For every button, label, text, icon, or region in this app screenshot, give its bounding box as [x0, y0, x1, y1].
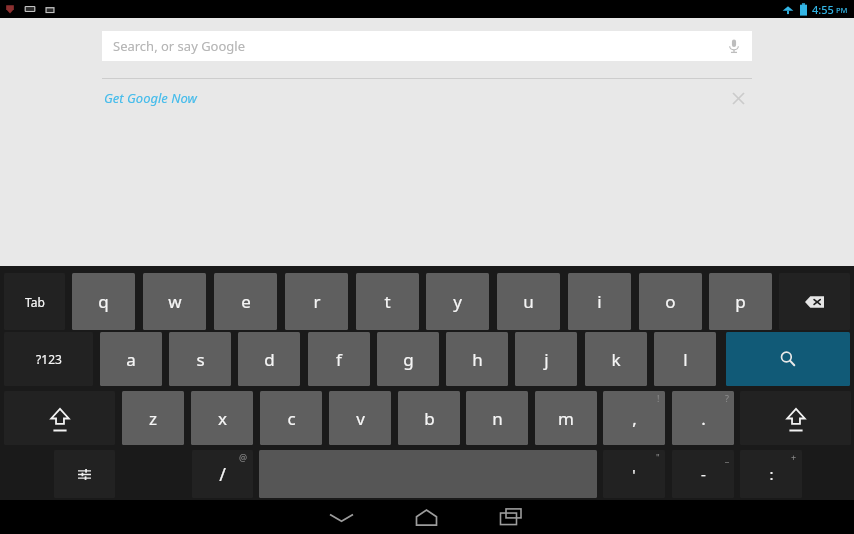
- button[interactable]: -: [672, 450, 734, 498]
- staticText: !: [657, 392, 660, 404]
- button[interactable]: /: [192, 450, 253, 498]
- button[interactable]: ': [603, 450, 665, 498]
- button[interactable]: x: [191, 391, 253, 445]
- button[interactable]: l: [654, 332, 716, 386]
- staticText: Get Google Now: [104, 89, 197, 107]
- button[interactable]: q: [72, 273, 135, 330]
- button[interactable]: Tab: [4, 273, 65, 330]
- staticText: g: [403, 348, 414, 371]
- button[interactable]: z: [122, 391, 184, 445]
- button[interactable]: Dismiss: [724, 84, 752, 112]
- staticText: .: [701, 407, 706, 430]
- button[interactable]: u: [497, 273, 560, 330]
- staticText: x: [218, 407, 227, 430]
- button[interactable]: Recent apps: [469, 500, 554, 534]
- button[interactable]: k: [585, 332, 647, 386]
- staticText: ,: [632, 407, 637, 430]
- button[interactable]: Hide keyboard: [299, 500, 384, 534]
- staticText: Search, or say Google: [113, 37, 246, 55]
- button[interactable]: s: [169, 332, 231, 386]
- staticText: t: [384, 290, 391, 313]
- staticText: p: [735, 290, 746, 313]
- staticText: PM: [836, 5, 848, 15]
- button[interactable]: ,: [603, 391, 665, 445]
- staticText: b: [424, 407, 435, 430]
- button[interactable]: ?123: [4, 332, 93, 386]
- button[interactable]: y: [426, 273, 489, 330]
- button[interactable]: r: [285, 273, 348, 330]
- button[interactable]: Search, or say Google: [102, 31, 752, 61]
- staticText: s: [196, 348, 205, 371]
- staticText: f: [336, 348, 342, 371]
- staticText: @: [239, 451, 248, 463]
- button[interactable]: v: [329, 391, 391, 445]
- staticText: e: [241, 290, 251, 313]
- staticText: i: [597, 290, 602, 313]
- button[interactable]: j: [515, 332, 577, 386]
- staticText: h: [472, 348, 483, 371]
- staticText: :: [769, 464, 774, 484]
- button[interactable]: f: [308, 332, 370, 386]
- staticText: Tab: [25, 294, 45, 310]
- button[interactable]: Shift: [4, 391, 115, 445]
- button[interactable]: d: [238, 332, 300, 386]
- staticText: ": [656, 451, 660, 463]
- staticText: ': [632, 464, 636, 484]
- staticText: y: [453, 290, 462, 313]
- button[interactable]: m: [535, 391, 597, 445]
- button[interactable]: Home: [384, 500, 469, 534]
- button[interactable]: i: [568, 273, 631, 330]
- staticText: z: [149, 407, 157, 430]
- staticText: ?123: [36, 351, 62, 367]
- button[interactable]: .: [672, 391, 734, 445]
- staticText: v: [356, 407, 365, 430]
- button[interactable]: :: [740, 450, 802, 498]
- button[interactable]: e: [214, 273, 277, 330]
- staticText: d: [264, 348, 275, 371]
- button[interactable]: Shift: [740, 391, 851, 445]
- button[interactable]: n: [466, 391, 528, 445]
- button[interactable]: b: [398, 391, 460, 445]
- button[interactable]: o: [639, 273, 702, 330]
- staticText: w: [168, 290, 182, 313]
- staticText: ?: [725, 392, 729, 404]
- staticText: /: [219, 462, 226, 487]
- button[interactable]: w: [143, 273, 206, 330]
- button[interactable]: Voice search: [719, 31, 749, 61]
- button[interactable]: t: [356, 273, 419, 330]
- staticText: r: [313, 290, 321, 313]
- staticText: 4:55: [812, 2, 834, 17]
- button[interactable]: h: [446, 332, 508, 386]
- staticText: o: [665, 290, 676, 313]
- button[interactable]: g: [377, 332, 439, 386]
- button[interactable]: p: [709, 273, 772, 330]
- button[interactable]: Get Google Now: [102, 82, 199, 114]
- button[interactable]: c: [260, 391, 322, 445]
- staticText: m: [558, 407, 574, 430]
- button[interactable]: Backspace: [779, 273, 850, 330]
- staticText: _: [725, 451, 729, 463]
- staticText: n: [492, 407, 503, 430]
- staticText: q: [98, 290, 109, 313]
- staticText: c: [287, 407, 296, 430]
- staticText: j: [544, 348, 549, 371]
- staticText: a: [126, 348, 136, 371]
- button[interactable]: Search: [726, 332, 850, 386]
- staticText: u: [523, 290, 534, 313]
- staticText: +: [791, 451, 797, 463]
- staticText: -: [701, 464, 706, 484]
- staticText: l: [683, 348, 688, 371]
- button[interactable]: Keyboard settings: [54, 450, 115, 498]
- button[interactable]: a: [100, 332, 162, 386]
- staticText: k: [611, 348, 621, 371]
